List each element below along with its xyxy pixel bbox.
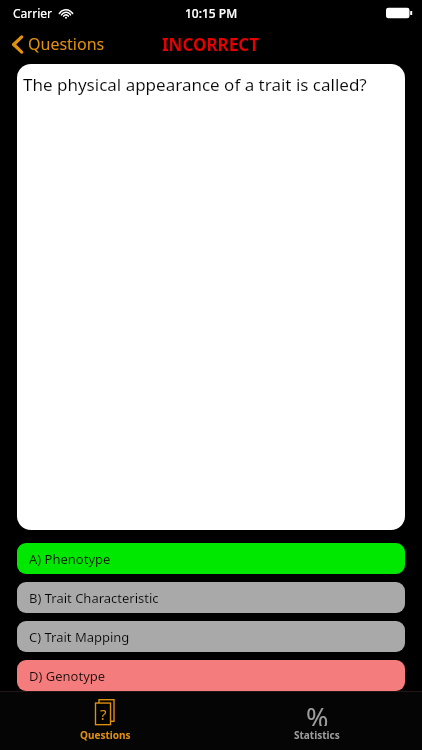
- button[interactable]: %: [272, 694, 362, 747]
- staticText: A) Phenotype: [29, 550, 111, 568]
- staticText: %: [306, 699, 329, 726]
- staticText: Questions: [28, 33, 105, 55]
- staticText: 10:15 PM: [185, 5, 238, 21]
- staticText: C) Trait Mapping: [29, 628, 130, 646]
- button[interactable]: ?: [58, 694, 153, 747]
- staticText: ?: [100, 704, 107, 724]
- button[interactable]: Back: [0, 28, 117, 60]
- staticText: INCORRECT: [162, 33, 260, 56]
- staticText: B) Trait Characteristic: [29, 589, 159, 607]
- button[interactable]: B) Trait Characteristic: [17, 582, 405, 613]
- staticText: The physical appearance of a trait is ca…: [23, 73, 367, 96]
- staticText: D) Genotype: [29, 667, 106, 685]
- staticText: Questions: [80, 728, 131, 742]
- staticText: Carrier: [13, 5, 53, 21]
- button[interactable]: A) Phenotype: [17, 543, 405, 574]
- other: Back: [12, 35, 23, 54]
- button[interactable]: D) Genotype: [17, 660, 405, 691]
- staticText: Statistics: [294, 728, 340, 742]
- button[interactable]: C) Trait Mapping: [17, 621, 405, 652]
